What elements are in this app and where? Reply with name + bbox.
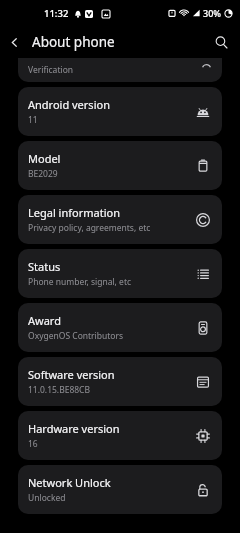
- staticText: 11.0.15.BE88CB: [28, 384, 91, 396]
- button[interactable]: Android version: [18, 87, 222, 136]
- button[interactable]: Legal information: [18, 195, 222, 244]
- button[interactable]: Verification: [18, 58, 222, 82]
- staticText: Android version: [28, 97, 110, 112]
- staticText: Award: [28, 313, 61, 328]
- staticText: Phone number, signal, etc: [28, 276, 132, 288]
- button[interactable]: Software version: [18, 357, 222, 406]
- staticText: Legal information: [28, 205, 120, 220]
- staticText: OxygenOS Contributors: [28, 330, 124, 342]
- button[interactable]: Hardware version: [18, 411, 222, 460]
- staticText: 16: [28, 438, 38, 450]
- staticText: Privacy policy, agreements, etc: [28, 222, 151, 234]
- button[interactable]: Network Unlock: [18, 465, 222, 514]
- button[interactable]: Back: [0, 32, 29, 53]
- staticText: Network Unlock: [28, 475, 111, 490]
- staticText: About phone: [32, 33, 115, 51]
- staticText: 11:32: [44, 7, 69, 20]
- staticText: Hardware version: [28, 421, 120, 436]
- button[interactable]: Status: [18, 249, 222, 298]
- staticText: Status: [28, 259, 61, 274]
- staticText: Software version: [28, 367, 115, 382]
- staticText: BE2029: [28, 168, 58, 180]
- staticText: Model: [28, 151, 61, 166]
- staticText: Unlocked: [28, 492, 66, 504]
- button[interactable]: Search: [209, 30, 234, 55]
- staticText: Verification: [28, 64, 74, 76]
- button[interactable]: Model: [18, 141, 222, 190]
- staticText: 11: [28, 114, 38, 126]
- button[interactable]: Award: [18, 303, 222, 352]
- staticText: 30%: [203, 7, 221, 19]
